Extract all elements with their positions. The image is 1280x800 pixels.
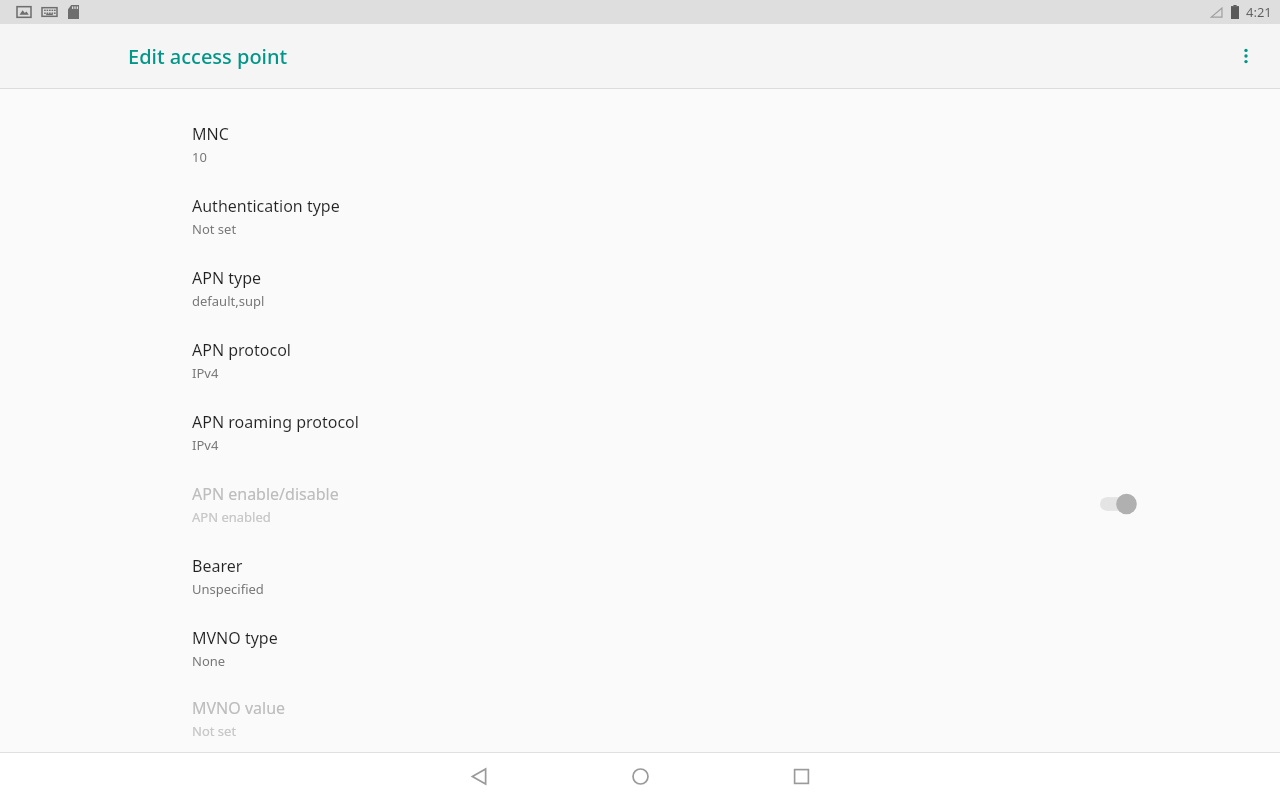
button[interactable]: APN enable/disable bbox=[0, 468, 1280, 540]
button[interactable]: APN roaming protocol bbox=[0, 396, 1280, 468]
button[interactable]: MVNO value bbox=[0, 684, 1280, 753]
button[interactable]: Authentication type bbox=[0, 180, 1280, 252]
staticText: 10 bbox=[192, 148, 207, 166]
staticText: Authentication type bbox=[192, 195, 340, 217]
staticText: 4:21 bbox=[1246, 3, 1272, 21]
button[interactable]: APN enable/disable toggle bbox=[1092, 484, 1148, 524]
button[interactable]: MVNO type bbox=[0, 612, 1280, 684]
button[interactable]: Back bbox=[455, 753, 503, 800]
staticText: IPv4 bbox=[192, 436, 219, 454]
button[interactable]: More options bbox=[1222, 32, 1270, 80]
staticText: Not set bbox=[192, 220, 237, 238]
staticText: APN enable/disable bbox=[192, 483, 339, 505]
button[interactable]: Recent apps bbox=[777, 753, 825, 800]
button[interactable]: Bearer bbox=[0, 540, 1280, 612]
staticText: Bearer bbox=[192, 555, 243, 577]
button[interactable]: MNC bbox=[0, 108, 1280, 180]
staticText: default,supl bbox=[192, 292, 265, 310]
staticText: Not set bbox=[192, 722, 237, 740]
staticText: MVNO type bbox=[192, 627, 278, 649]
staticText: MVNO value bbox=[192, 697, 286, 719]
staticText: IPv4 bbox=[192, 364, 219, 382]
button[interactable]: APN type bbox=[0, 252, 1280, 324]
button[interactable]: Home bbox=[616, 753, 664, 800]
staticText: APN roaming protocol bbox=[192, 411, 359, 433]
button[interactable]: APN protocol bbox=[0, 324, 1280, 396]
staticText: Unspecified bbox=[192, 580, 264, 598]
staticText: None bbox=[192, 652, 226, 670]
staticText: Edit access point bbox=[128, 43, 288, 70]
staticText: APN enabled bbox=[192, 508, 271, 526]
staticText: APN protocol bbox=[192, 339, 291, 361]
staticText: MNC bbox=[192, 123, 229, 145]
staticText: APN type bbox=[192, 267, 262, 289]
